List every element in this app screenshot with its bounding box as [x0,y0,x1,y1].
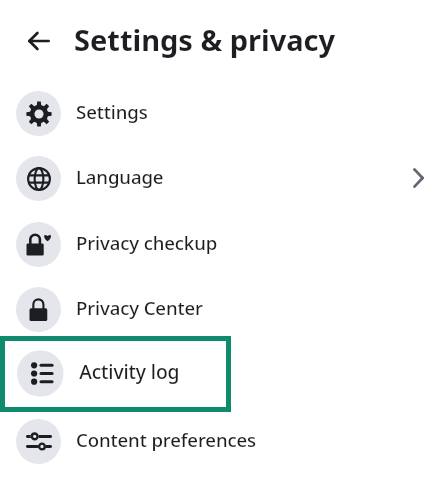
button[interactable]: Privacy Center [0,276,440,342]
staticText: Privacy Center [76,295,203,320]
button[interactable]: Content preferences [0,408,440,474]
button[interactable]: Language [0,145,440,211]
staticText: Settings & privacy [74,20,336,59]
staticText: Language [76,164,164,189]
button[interactable]: Privacy checkup [0,211,440,277]
button[interactable]: Settings [0,80,440,146]
button[interactable]: Back [14,16,63,65]
staticText: Content preferences [76,427,257,452]
staticText: Privacy checkup [76,230,218,255]
button[interactable]: Activity log [0,339,440,407]
staticText: Activity log [79,358,180,384]
staticText: Settings [76,99,148,124]
